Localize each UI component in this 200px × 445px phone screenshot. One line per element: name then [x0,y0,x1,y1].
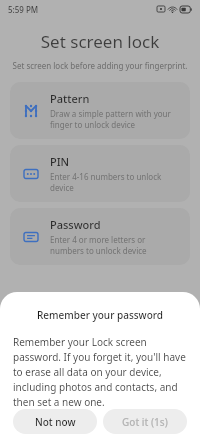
button[interactable]: Got it (1s) [103,409,187,434]
button[interactable]: Password [10,208,190,265]
other: PIN [24,167,38,181]
staticText: Password [50,217,101,232]
staticText: Enter 4-16 numbers to unlock device [50,171,178,193]
other: Password [24,230,38,244]
staticText: Enter 4 or more letters or numbers to un… [50,234,178,256]
staticText: Got it (1s) [122,415,168,429]
other: Pattern [24,104,38,118]
staticText: 5:59 PM [8,4,39,15]
staticText: Pattern [50,91,90,106]
staticText: PIN [50,154,70,169]
staticText: Remember your Lock screen password. If y… [13,335,187,409]
staticText: Set screen lock [0,30,200,53]
button[interactable]: PIN [10,145,190,202]
button[interactable]: Not now [13,409,97,434]
staticText: Draw a simple pattern with your finger t… [50,108,178,130]
staticText: Set screen lock before adding your finge… [0,60,200,71]
staticText: Not now [35,415,76,429]
button[interactable]: Pattern [10,82,190,139]
staticText: Remember your password [13,308,187,322]
